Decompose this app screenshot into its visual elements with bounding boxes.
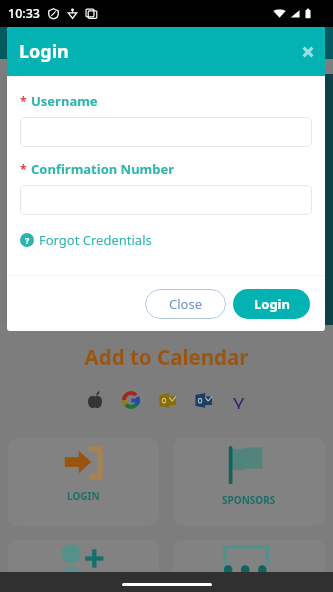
- staticText: SPONSORS: [222, 493, 276, 507]
- staticText: Forgot Credentials: [39, 231, 152, 249]
- button[interactable]: SPONSORS: [173, 438, 325, 526]
- staticText: Confirmation Number: [31, 160, 175, 178]
- button[interactable]: ?: [20, 231, 152, 249]
- staticText: Close: [169, 295, 202, 313]
- staticText: Login: [19, 39, 69, 64]
- staticText: ?: [25, 234, 30, 246]
- staticText: LOGIN: [67, 489, 100, 503]
- staticText: *: [20, 161, 27, 177]
- button[interactable]: [8, 540, 159, 592]
- button[interactable]: [20, 117, 312, 147]
- button[interactable]: [20, 185, 312, 215]
- button[interactable]: Close: [296, 40, 320, 64]
- staticText: 10:33: [8, 5, 41, 22]
- button[interactable]: Login: [233, 289, 310, 319]
- button[interactable]: Close: [145, 289, 226, 319]
- button[interactable]: LOGIN: [8, 438, 159, 526]
- staticText: Username: [31, 92, 98, 110]
- staticText: *: [20, 93, 27, 109]
- staticText: Login: [254, 295, 290, 313]
- button[interactable]: [173, 540, 325, 592]
- staticText: Y: [233, 391, 245, 409]
- staticText: Add to Calendar: [0, 343, 333, 371]
